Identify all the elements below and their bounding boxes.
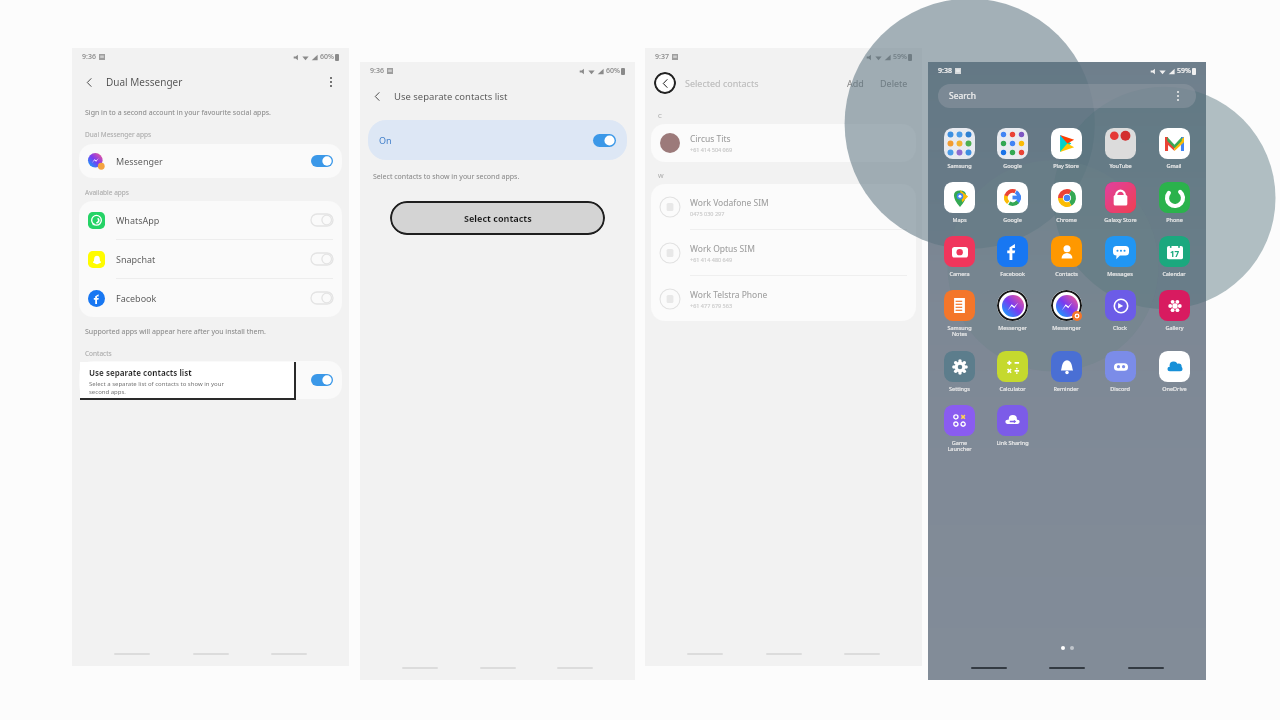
button[interactable]: Search: [938, 84, 1196, 108]
staticText: Camera: [949, 270, 970, 277]
button[interactable]: [79, 361, 342, 399]
button[interactable]: Facebook: [986, 236, 1039, 277]
button[interactable]: Settings: [933, 351, 986, 392]
button[interactable]: Link Sharing: [986, 405, 1039, 446]
staticText: Galaxy Store: [1104, 216, 1137, 223]
button[interactable]: Facebook: [79, 279, 342, 317]
button[interactable]: Discord: [1093, 351, 1147, 392]
staticText: Contacts: [1055, 270, 1078, 277]
button[interactable]: Select contacts: [390, 201, 605, 235]
staticText: Messenger: [116, 155, 163, 167]
staticText: Clock: [1113, 324, 1127, 331]
staticText: +61 477 679 563: [690, 302, 733, 309]
button[interactable]: Samsung Notes: [933, 290, 986, 338]
staticText: Sign in to a second account in your favo…: [85, 108, 271, 118]
staticText: 9:36: [370, 66, 384, 76]
button[interactable]: Game Launcher: [933, 405, 986, 453]
button[interactable]: Circus Tits: [651, 124, 916, 162]
staticText: Google: [1003, 216, 1022, 223]
button[interactable]: Play Store: [1039, 128, 1093, 169]
staticText: Messenger: [1052, 324, 1081, 331]
button[interactable]: WhatsApp: [79, 201, 342, 239]
button[interactable]: Maps: [933, 182, 986, 223]
staticText: Snapchat: [116, 253, 156, 265]
button[interactable]: Phone: [1147, 182, 1201, 223]
staticText: Facebook: [116, 292, 157, 304]
staticText: 9:36: [82, 52, 96, 62]
button[interactable]: Gallery: [1147, 290, 1201, 331]
staticText: Settings: [949, 385, 970, 392]
button[interactable]: Contacts: [1039, 236, 1093, 277]
button[interactable]: Calculator: [986, 351, 1039, 392]
button[interactable]: YouTube: [1093, 128, 1147, 169]
staticText: Messenger: [998, 324, 1027, 331]
staticText: Reminder: [1053, 385, 1079, 392]
button[interactable]: Google: [986, 182, 1039, 223]
button[interactable]: Google: [986, 128, 1039, 169]
button[interactable]: Galaxy Store: [1093, 182, 1147, 223]
button[interactable]: Back: [83, 76, 96, 89]
staticText: 9:38: [938, 66, 952, 76]
staticText: Game Launcher: [947, 439, 972, 453]
staticText: 0475 030 297: [690, 210, 725, 217]
button[interactable]: Samsung: [933, 128, 986, 169]
staticText: YouTube: [1109, 162, 1132, 169]
button[interactable]: 17: [1147, 236, 1201, 277]
button[interactable]: Gmail: [1147, 128, 1201, 169]
staticText: Phone: [1166, 216, 1183, 223]
staticText: Link Sharing: [996, 439, 1029, 446]
button[interactable]: Work Vodafone SIM: [651, 184, 916, 229]
staticText: W: [658, 172, 664, 180]
staticText: Select contacts: [464, 212, 532, 224]
staticText: 17: [1170, 248, 1180, 259]
button[interactable]: Add: [842, 74, 869, 92]
button[interactable]: Reminder: [1039, 351, 1093, 392]
staticText: OneDrive: [1162, 385, 1187, 392]
staticText: Contacts: [85, 349, 112, 358]
staticText: Dual Messenger apps: [85, 130, 152, 139]
staticText: Samsung Notes: [947, 324, 972, 338]
button[interactable]: Back: [371, 90, 384, 103]
staticText: Add: [847, 77, 864, 89]
staticText: Dual Messenger: [106, 75, 183, 89]
staticText: +61 414 480 649: [690, 256, 733, 263]
button[interactable]: Messenger: [1039, 290, 1093, 331]
button[interactable]: Clock: [1093, 290, 1147, 331]
staticText: Delete: [880, 77, 908, 89]
button[interactable]: Messenger: [986, 290, 1039, 331]
staticText: Google: [1003, 162, 1022, 169]
staticText: Select a separate list of contacts to sh…: [89, 380, 224, 396]
staticText: Chrome: [1056, 216, 1077, 223]
staticText: Work Vodafone SIM: [690, 197, 769, 209]
button[interactable]: Work Optus SIM: [651, 230, 916, 275]
button[interactable]: Work Telstra Phone: [651, 276, 916, 321]
staticText: On: [379, 134, 392, 146]
button[interactable]: Messages: [1093, 236, 1147, 277]
staticText: Select contacts to show in your second a…: [373, 172, 520, 182]
button[interactable]: Snapchat: [79, 240, 342, 278]
staticText: Selected contacts: [685, 77, 759, 89]
button[interactable]: Messenger: [79, 144, 342, 178]
button[interactable]: Back: [654, 72, 676, 94]
button[interactable]: On: [368, 120, 627, 160]
staticText: Available apps: [85, 188, 129, 197]
staticText: WhatsApp: [116, 214, 160, 226]
staticText: +61 414 504 069: [690, 146, 733, 153]
button[interactable]: More options: [1171, 89, 1185, 103]
button[interactable]: More options: [324, 75, 338, 89]
staticText: 9:37: [655, 52, 669, 62]
staticText: Discord: [1110, 385, 1130, 392]
button[interactable]: Delete: [875, 74, 913, 92]
button[interactable]: Chrome: [1039, 182, 1093, 223]
staticText: Use separate contacts list: [394, 90, 508, 103]
staticText: 60%: [320, 52, 334, 62]
button[interactable]: OneDrive: [1147, 351, 1201, 392]
staticText: Messages: [1107, 270, 1133, 277]
staticText: Calendar: [1162, 270, 1186, 277]
staticText: Work Optus SIM: [690, 243, 755, 255]
staticText: 60%: [606, 66, 620, 76]
staticText: C: [658, 112, 662, 120]
button[interactable]: Camera: [933, 236, 986, 277]
staticText: Maps: [952, 216, 967, 223]
staticText: Use separate contacts list: [89, 367, 192, 378]
